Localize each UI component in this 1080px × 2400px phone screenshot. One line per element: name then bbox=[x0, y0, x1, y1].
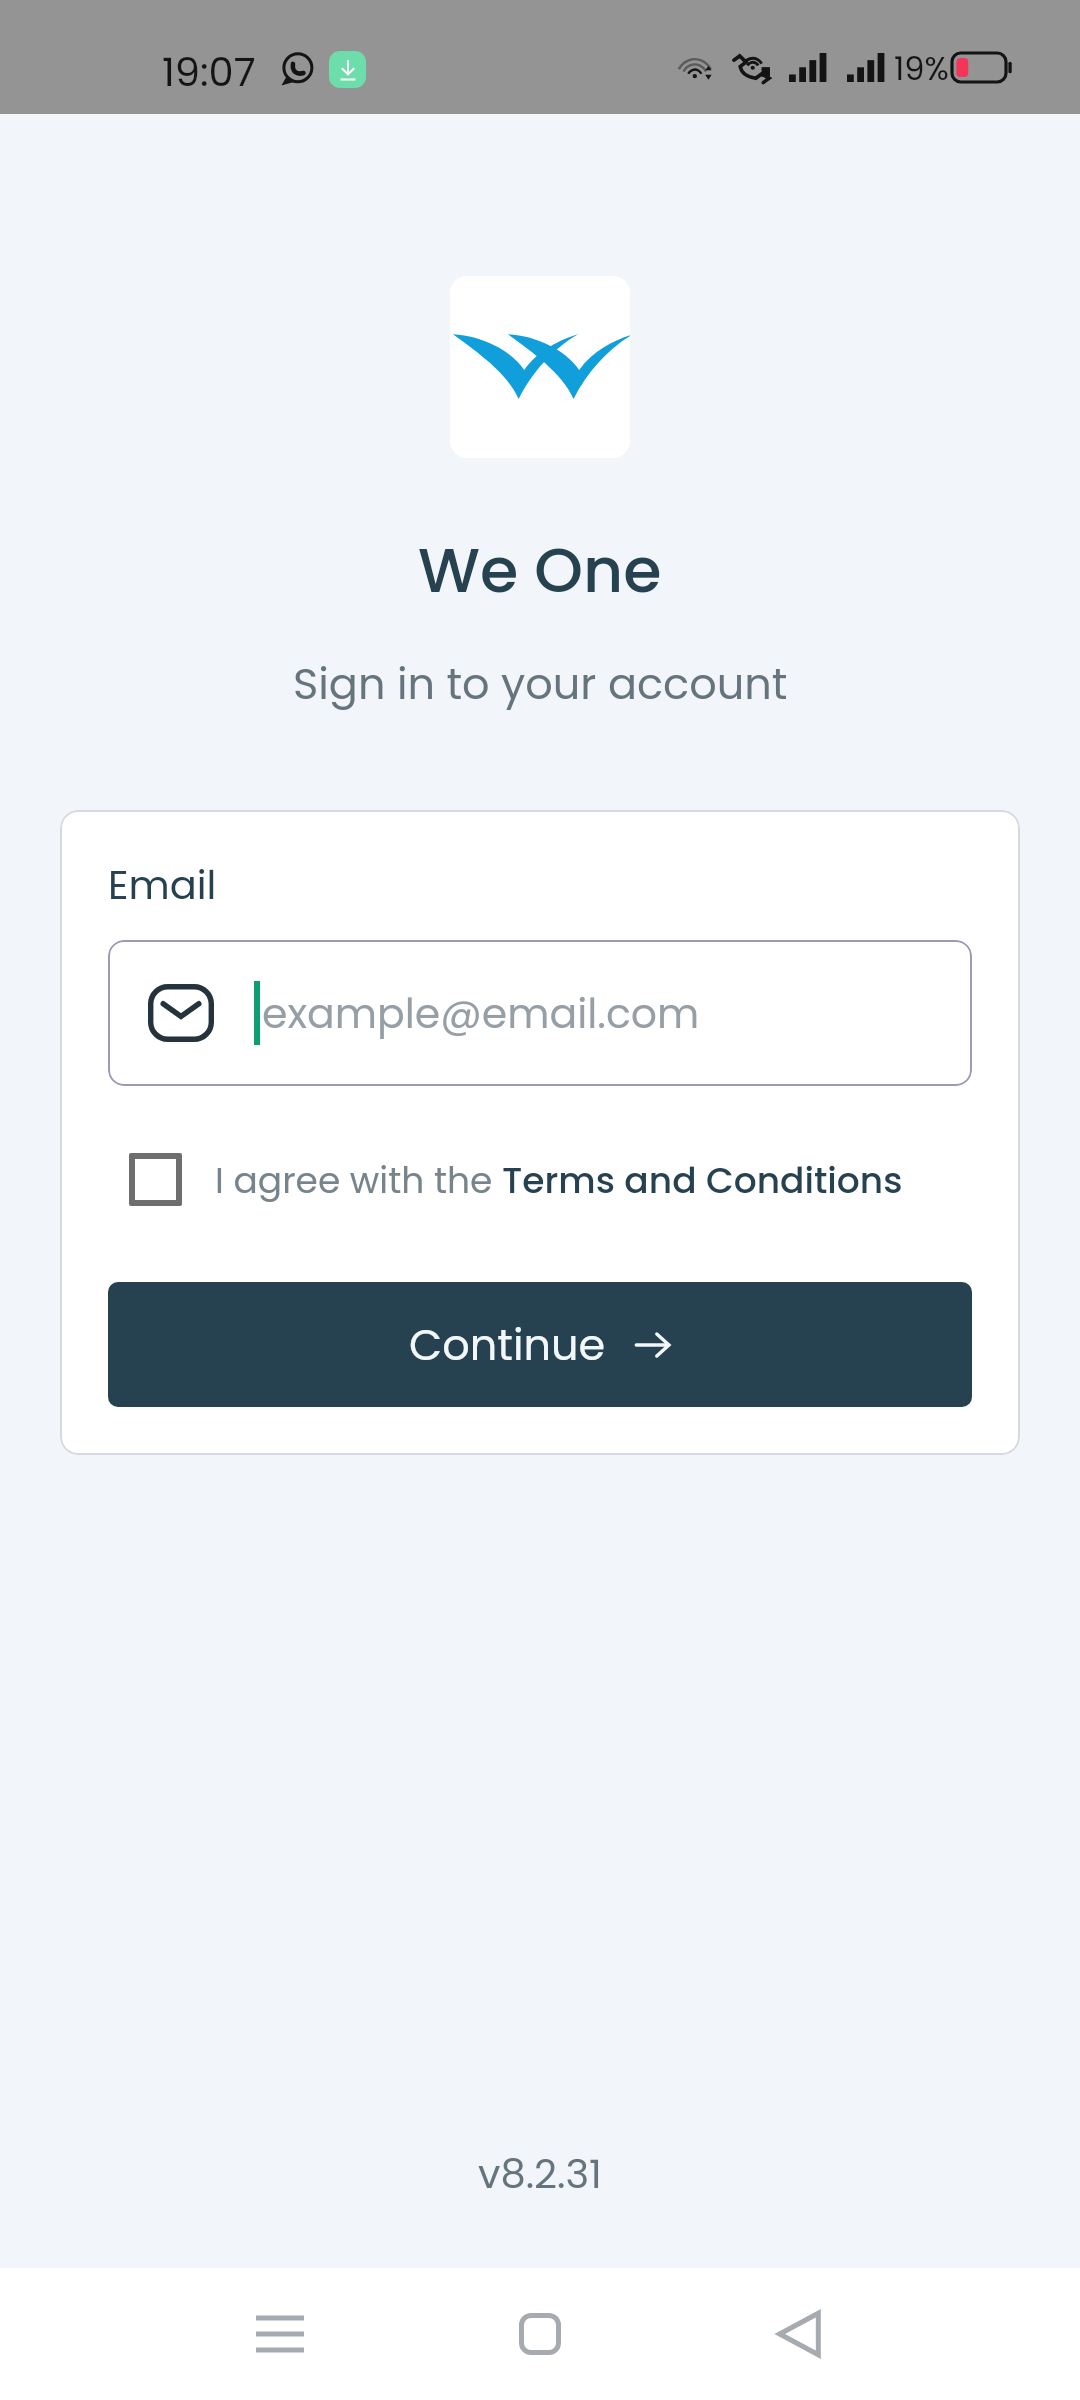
button[interactable]: I agree with the Terms and Conditions bbox=[129, 1153, 903, 1206]
staticText: example@email.com bbox=[262, 985, 700, 1042]
button[interactable]: Recent apps bbox=[220, 2274, 340, 2394]
staticText: 19% bbox=[894, 46, 949, 91]
staticText: Continue bbox=[409, 1315, 606, 1375]
staticText: 19:07 bbox=[162, 44, 256, 100]
button[interactable]: Back bbox=[739, 2274, 859, 2394]
staticText: We One bbox=[418, 527, 662, 614]
button[interactable]: Home bbox=[480, 2274, 600, 2394]
staticText: Sign in to your account bbox=[293, 654, 788, 714]
button[interactable]: Continue bbox=[108, 1282, 972, 1407]
staticText: Email bbox=[108, 857, 217, 913]
staticText: v8.2.31 bbox=[478, 2146, 602, 2202]
staticText: I agree with the Terms and Conditions bbox=[215, 1155, 903, 1205]
button[interactable]: example@email.com bbox=[108, 940, 972, 1086]
